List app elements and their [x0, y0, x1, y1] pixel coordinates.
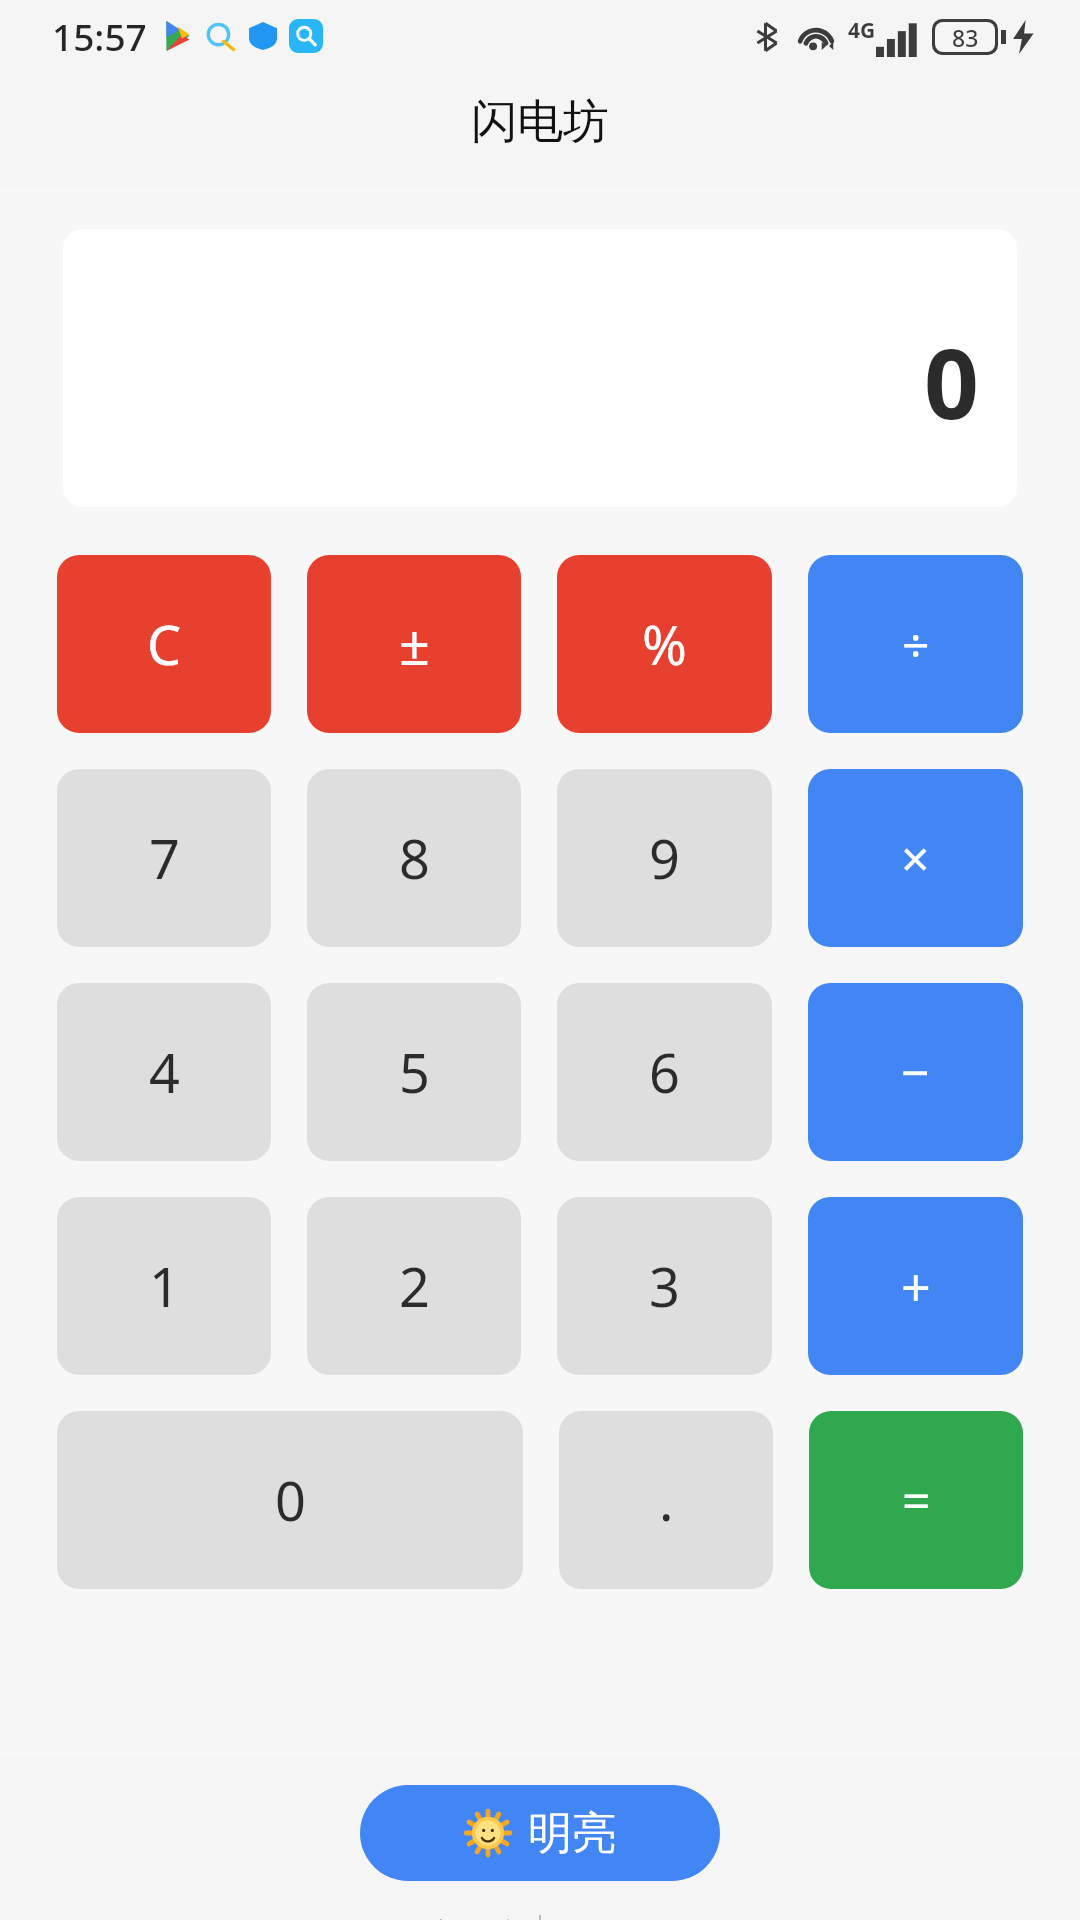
staticText: × [901, 824, 930, 892]
staticText: 83 [952, 22, 979, 52]
button[interactable]: 用户协议 [387, 1915, 527, 1920]
staticText: . [659, 1463, 674, 1537]
staticText: 6 [649, 1035, 680, 1109]
button[interactable]: = [809, 1411, 1023, 1589]
button[interactable]: 6 [557, 983, 772, 1161]
staticText: 8 [399, 821, 430, 895]
button[interactable]: 5 [307, 983, 521, 1161]
staticText: 9 [649, 821, 680, 895]
button[interactable]: 3 [557, 1197, 772, 1375]
other: Bright mode [464, 1809, 512, 1857]
staticText: − [901, 1038, 930, 1106]
staticText: 明亮 [528, 1806, 616, 1861]
staticText: 闪电坊 [471, 93, 609, 151]
staticText: + [901, 1251, 931, 1322]
staticText: 4 [149, 1035, 180, 1109]
staticText: C [147, 607, 182, 681]
staticText: 0 [924, 316, 979, 447]
button[interactable]: 0 [57, 1411, 523, 1589]
button[interactable]: ± [307, 555, 521, 733]
staticText: = [902, 1466, 931, 1534]
button[interactable]: + [808, 1197, 1023, 1375]
button[interactable]: C [57, 555, 271, 733]
button[interactable]: 9 [557, 769, 772, 947]
button[interactable]: 4 [57, 983, 271, 1161]
button[interactable]: 1 [57, 1197, 271, 1375]
staticText: 2 [399, 1249, 430, 1323]
staticText: 1 [149, 1249, 180, 1323]
staticText: 7 [149, 821, 180, 895]
staticText: ± [399, 607, 430, 681]
staticText: 3 [649, 1249, 680, 1323]
staticText: 0 [275, 1463, 306, 1537]
button[interactable]: ÷ [808, 555, 1023, 733]
staticText: 4G [848, 16, 876, 45]
button[interactable]: 2 [307, 1197, 521, 1375]
button[interactable]: 7 [57, 769, 271, 947]
staticText: % [642, 607, 687, 681]
button[interactable]: 8 [307, 769, 521, 947]
staticText: 15:57 [52, 11, 147, 61]
button[interactable]: % [557, 555, 772, 733]
button[interactable]: . [559, 1411, 773, 1589]
staticText: 5 [399, 1035, 430, 1109]
button[interactable]: × [808, 769, 1023, 947]
button[interactable]: − [808, 983, 1023, 1161]
button[interactable]: Bright mode [360, 1785, 720, 1881]
staticText: ÷ [902, 612, 930, 677]
